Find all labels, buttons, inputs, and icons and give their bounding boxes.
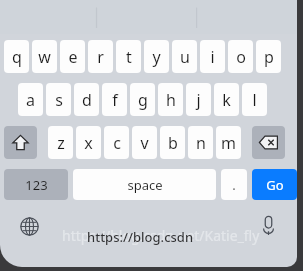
staticText: v: [140, 132, 149, 154]
staticText: https://blog.csdn.net/Katie_fly: [62, 226, 260, 245]
button[interactable]: s: [46, 83, 71, 116]
staticText: x: [84, 132, 93, 154]
button[interactable]: t: [116, 40, 141, 73]
staticText: w: [38, 46, 51, 68]
button[interactable]: w: [32, 40, 57, 73]
staticText: https://blog.csdn: [87, 228, 194, 246]
staticText: 123: [25, 176, 48, 194]
staticText: Go: [266, 176, 284, 194]
button[interactable]: k: [214, 83, 239, 116]
staticText: a: [26, 89, 35, 111]
staticText: u: [180, 46, 190, 68]
button[interactable]: d: [74, 83, 99, 116]
staticText: m: [221, 132, 236, 154]
button[interactable]: u: [172, 40, 197, 73]
button[interactable]: g: [130, 83, 155, 116]
button[interactable]: Switch keyboard language: [14, 211, 44, 241]
button[interactable]: y: [144, 40, 169, 73]
staticText: t: [126, 46, 132, 68]
staticText: j: [196, 89, 201, 111]
staticText: o: [236, 46, 246, 68]
staticText: .: [232, 176, 236, 194]
button[interactable]: l: [242, 83, 267, 116]
button[interactable]: Go: [252, 169, 297, 200]
staticText: space: [127, 176, 163, 194]
staticText: p: [264, 46, 274, 68]
staticText: e: [68, 46, 78, 68]
staticText: r: [97, 46, 104, 68]
staticText: n: [196, 132, 206, 154]
button[interactable]: b: [160, 126, 185, 159]
staticText: f: [112, 89, 118, 111]
button[interactable]: Shift: [4, 126, 37, 159]
staticText: l: [252, 89, 257, 111]
staticText: z: [57, 132, 65, 154]
staticText: d: [82, 89, 92, 111]
button[interactable]: q: [4, 40, 29, 73]
button[interactable]: j: [186, 83, 211, 116]
staticText: h: [166, 89, 176, 111]
staticText: q: [12, 46, 22, 68]
staticText: s: [55, 89, 63, 111]
button[interactable]: .: [221, 169, 247, 200]
button[interactable]: x: [76, 126, 101, 159]
staticText: b: [168, 132, 178, 154]
button[interactable]: i: [200, 40, 225, 73]
button[interactable]: Dictation: [253, 211, 283, 241]
button[interactable]: Backspace: [252, 126, 285, 159]
button[interactable]: space: [73, 169, 216, 200]
button[interactable]: h: [158, 83, 183, 116]
button[interactable]: c: [104, 126, 129, 159]
button[interactable]: o: [228, 40, 253, 73]
button[interactable]: p: [256, 40, 281, 73]
staticText: i: [210, 46, 215, 68]
staticText: k: [222, 89, 231, 111]
staticText: g: [138, 89, 148, 111]
button[interactable]: z: [48, 126, 73, 159]
button[interactable]: n: [188, 126, 213, 159]
button[interactable]: r: [88, 40, 113, 73]
button[interactable]: e: [60, 40, 85, 73]
button[interactable]: a: [18, 83, 43, 116]
button[interactable]: m: [216, 126, 241, 159]
staticText: c: [113, 132, 121, 154]
button[interactable]: 123: [4, 169, 68, 200]
button[interactable]: f: [102, 83, 127, 116]
button[interactable]: v: [132, 126, 157, 159]
staticText: y: [152, 46, 161, 68]
